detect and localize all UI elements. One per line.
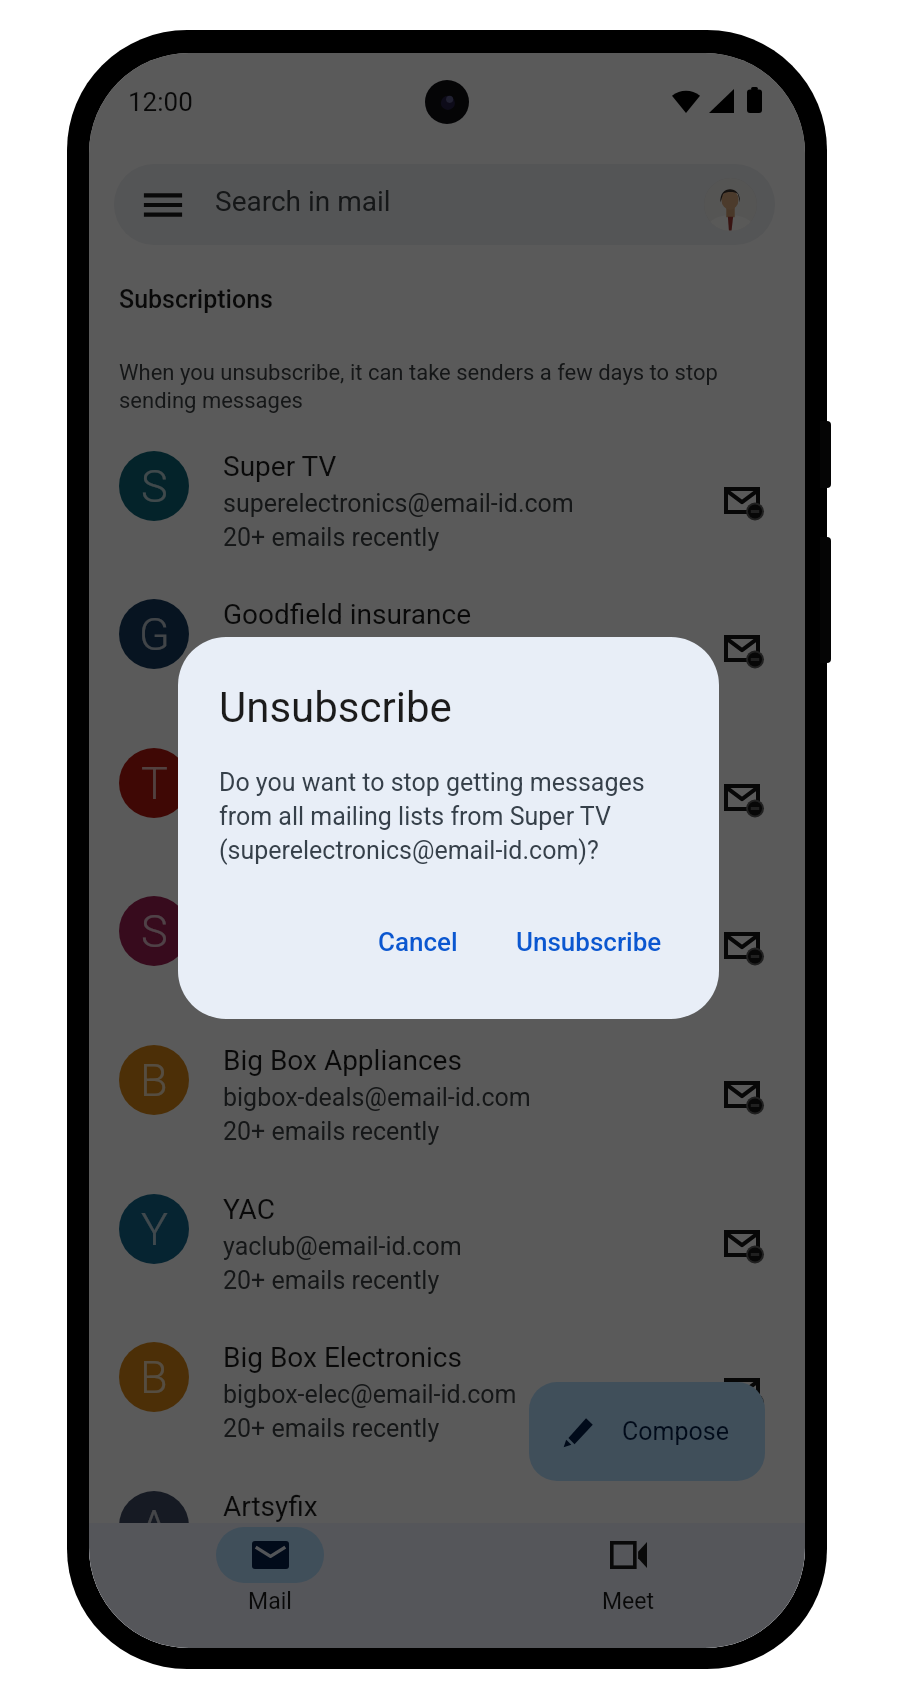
staticText: 20+ emails recently [223,820,440,849]
staticText: yaclub@email-id.com [223,1232,462,1261]
staticText: bigbox-deals@email-id.com [223,1083,531,1112]
button[interactable]: Unsubscribe from The Sports Store [709,766,781,836]
staticText: Unsubscribe [219,683,452,732]
staticText: Unsubscribe [516,927,662,957]
staticText: A [140,1500,169,1553]
button[interactable]: Unsubscribe [496,917,682,967]
button[interactable]: Unsubscribe from YAC [709,1212,781,1282]
other: Open navigation menu [146,194,180,216]
staticText: YAC [223,1193,275,1226]
staticText: 20+ emails recently [223,523,440,552]
staticText: Big Box Electronics [223,1341,462,1374]
staticText: Big Box Appliances [223,1044,462,1077]
staticText: Cancel [378,927,458,957]
staticText: S [141,460,168,513]
button[interactable]: Cancel [358,917,478,967]
button[interactable]: S [89,857,805,1006]
button[interactable]: T [89,709,805,858]
button[interactable]: Open navigation menu [114,164,775,245]
staticText: superelectronics@email-id.com [223,489,574,518]
staticText: 20+ emails recently [223,1117,440,1146]
staticText: Do you want to stop getting messages fro… [219,768,659,865]
staticText: Mail [216,1588,324,1615]
staticText: 20+ emails recently [223,671,440,700]
staticText: Artsyfix [223,1490,318,1523]
staticText: 20+ emails recently [223,1414,440,1443]
button[interactable]: G [89,560,805,709]
staticText: Compose [622,1417,729,1446]
staticText: Y [141,1203,168,1256]
button[interactable]: Unsubscribe from Goodfield insurance [709,617,781,687]
staticText: S [141,905,168,958]
staticText: 20+ emails recently [223,1563,440,1592]
button[interactable]: Account [704,178,757,231]
button[interactable]: Y [89,1155,805,1304]
staticText: bigbox-elec@email-id.com [223,1380,517,1409]
button[interactable]: Unsubscribe from Big Box Appliances [709,1063,781,1133]
button[interactable]: Meet [574,1523,682,1648]
button[interactable]: Mail [216,1523,324,1648]
button[interactable]: B [89,1006,805,1155]
staticText: style@email-id.com [223,934,442,963]
button[interactable]: A [89,1452,805,1601]
button[interactable]: Unsubscribe from Style Spot [709,914,781,984]
staticText: The Sports Store [223,747,432,780]
staticText: 12:00 [128,87,193,117]
staticText: Subscriptions [119,285,273,314]
staticText: B [140,1054,168,1107]
staticText: artsyfix@email-id.com [223,1529,472,1558]
button[interactable]: Unsubscribe from Big Box Electronics [709,1360,781,1430]
staticText: Super TV [223,450,337,483]
staticText: 20+ emails recently [223,1266,440,1295]
staticText: Search in mail [215,185,391,218]
staticText: T [141,757,168,810]
button[interactable]: Unsubscribe from Super TV [709,469,781,539]
staticText: B [140,1351,168,1404]
button[interactable]: Compose [529,1382,765,1481]
staticText: G [139,608,170,661]
staticText: Meet [574,1588,682,1615]
button[interactable]: S [89,412,805,561]
button[interactable]: B [89,1303,805,1452]
staticText: sports@email-id.com [223,786,461,815]
staticText: When you unsubscribe, it can take sender… [119,360,719,414]
staticText: Goodfield insurance [223,598,472,631]
